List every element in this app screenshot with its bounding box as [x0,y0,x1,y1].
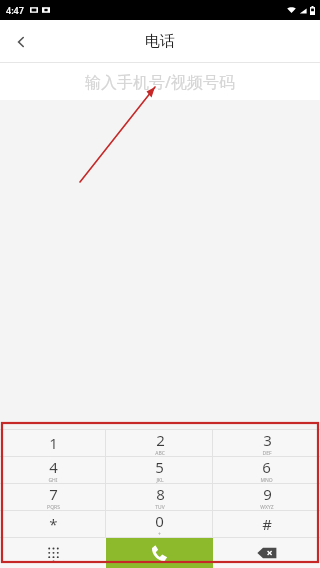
staticText: TUV [155,504,165,510]
button[interactable]: Keypad [0,538,106,568]
staticText: 0 [155,511,164,531]
staticText: WXYZ [260,504,274,510]
staticText: ABC [155,450,165,456]
button[interactable]: # [213,511,320,537]
staticText: 输入手机号/视频号码 [85,71,235,93]
staticText: MNO [260,477,273,483]
staticText: 2 [156,430,165,450]
button[interactable]: Backspace [213,538,320,568]
button[interactable]: * [0,511,106,537]
staticText: 8 [156,484,165,504]
button[interactable]: Call [106,538,213,568]
staticText: 电话 [145,32,175,51]
staticText: * [49,514,58,534]
staticText: PQRS [47,504,60,510]
staticText: GHI [48,477,58,483]
staticText: 4:47 [6,4,24,16]
staticText: 1 [49,433,58,453]
button[interactable]: 3 [213,430,320,456]
button[interactable]: 7 [0,484,106,510]
staticText: 3 [263,430,272,450]
button[interactable]: 8 [106,484,213,510]
staticText: 7 [49,484,58,504]
staticText: JKL [156,477,164,483]
button[interactable]: 0 [106,511,213,537]
button[interactable]: 6 [213,457,320,483]
button[interactable]: 2 [106,430,213,456]
staticText: # [262,514,272,534]
staticText: 6 [262,457,271,477]
button[interactable]: 5 [106,457,213,483]
button[interactable]: 9 [213,484,320,510]
staticText: 9 [263,484,272,504]
button[interactable]: 1 [0,430,106,456]
staticText: DEF [262,450,272,456]
staticText: + [158,531,161,537]
staticText: 5 [155,457,164,477]
button[interactable]: 4 [0,457,106,483]
staticText: 4 [49,457,58,477]
button[interactable]: Back [0,21,42,63]
